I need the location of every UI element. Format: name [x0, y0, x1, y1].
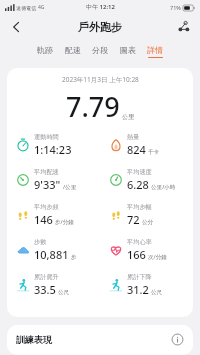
staticText: 平均步幅: [127, 203, 152, 211]
staticText: 平均步頻: [34, 203, 59, 211]
button[interactable]: 平均速度: [100, 168, 193, 192]
staticText: 圖表: [120, 45, 136, 55]
button[interactable]: 平均心率: [100, 238, 193, 262]
staticText: 詳情: [147, 45, 163, 55]
button[interactable]: 步數: [7, 238, 100, 262]
staticText: 71%: [170, 4, 181, 11]
staticText: /公里: [63, 183, 77, 191]
button[interactable]: 配速: [64, 45, 82, 58]
staticText: 2023年11月3日 上午10:28: [62, 75, 139, 84]
staticText: 步/分鐘: [55, 218, 74, 226]
staticText: 166: [127, 247, 146, 262]
staticText: 公分: [142, 219, 154, 226]
staticText: 31.2: [127, 282, 149, 297]
staticText: 戶外跑步: [78, 20, 122, 34]
staticText: 配速: [65, 45, 81, 55]
button[interactable]: 熱量: [100, 133, 193, 157]
staticText: 1:14:23: [34, 142, 72, 157]
button[interactable]: 運動時間: [7, 133, 100, 157]
button[interactable]: 軌跡: [36, 45, 54, 58]
staticText: 熱量: [127, 133, 140, 141]
staticText: 4G: [38, 4, 45, 11]
button[interactable]: 累計爬升: [7, 273, 100, 297]
staticText: 步: [71, 254, 77, 261]
button[interactable]: 分段: [91, 45, 109, 58]
staticText: 33.5: [34, 282, 56, 297]
button[interactable]: 平均配速: [7, 168, 100, 192]
staticText: 分段: [92, 45, 108, 55]
staticText: 9'33": [34, 177, 61, 192]
staticText: 7.79: [66, 88, 120, 125]
staticText: 6.28: [127, 177, 149, 192]
button[interactable]: 詳情: [146, 45, 164, 58]
staticText: 累計爬升: [34, 273, 59, 281]
staticText: 公里/小時: [151, 183, 176, 191]
staticText: 平均配速: [34, 168, 59, 176]
button[interactable]: 平均步幅: [100, 203, 193, 227]
staticText: 遠傳電信: [16, 5, 36, 11]
staticText: 中午 12:12: [86, 3, 115, 11]
staticText: 訓練表現: [16, 334, 52, 345]
staticText: 運動時間: [34, 133, 59, 141]
staticText: 平均速度: [127, 168, 152, 176]
staticText: 公里: [122, 113, 134, 121]
button[interactable]: 平均步頻: [7, 203, 100, 227]
staticText: 平均心率: [127, 238, 152, 246]
staticText: 146: [34, 212, 53, 227]
staticText: 累計下降: [127, 273, 152, 281]
staticText: 步數: [34, 238, 47, 246]
staticText: 次/分鐘: [148, 253, 167, 261]
staticText: 軌跡: [37, 45, 53, 55]
button[interactable]: Back: [4, 15, 28, 39]
staticText: 10,881: [34, 247, 69, 262]
staticText: 公尺: [151, 289, 163, 296]
staticText: 千卡: [148, 149, 160, 156]
staticText: 824: [127, 142, 146, 157]
button[interactable]: 圖表: [119, 45, 137, 58]
staticText: 72: [127, 212, 140, 227]
staticText: 公尺: [58, 289, 70, 296]
button[interactable]: Info: [171, 333, 184, 346]
button[interactable]: Share: [173, 16, 195, 38]
button[interactable]: 累計下降: [100, 273, 193, 297]
